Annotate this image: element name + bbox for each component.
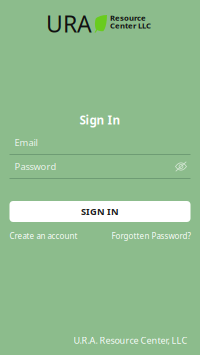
- button[interactable]: Show password: [173, 161, 190, 172]
- staticText: Resource: [110, 13, 146, 23]
- button[interactable]: SIGN IN: [9, 201, 190, 222]
- staticText: Password: [14, 160, 56, 173]
- staticText: Sign In: [79, 112, 120, 128]
- button[interactable]: Forgotten Password?: [111, 231, 190, 241]
- staticText: U.R.A. Resource Center, LLC: [73, 334, 187, 346]
- staticText: Forgotten Password?: [111, 231, 190, 241]
- staticText: Email: [14, 136, 37, 149]
- button[interactable]: Create an account: [9, 231, 77, 241]
- staticText: SIGN IN: [81, 205, 119, 218]
- staticText: URA: [46, 8, 92, 39]
- staticText: Create an account: [9, 231, 77, 241]
- staticText: Center LLC: [110, 20, 151, 31]
